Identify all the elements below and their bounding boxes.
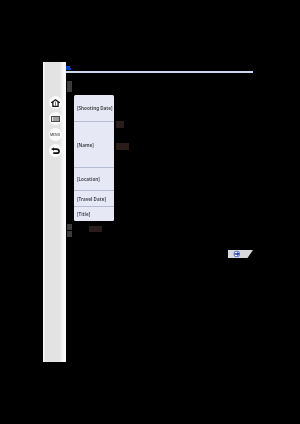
staticText: [Name]: [77, 142, 94, 148]
staticText: [Title]: [77, 211, 91, 217]
staticText: MENU: [50, 132, 61, 136]
button[interactable]: Recent apps: [47, 110, 63, 126]
button[interactable]: [Shooting Date]: [74, 95, 114, 121]
button[interactable]: [Title]: [74, 207, 114, 221]
staticText: [Location]: [77, 176, 100, 182]
button[interactable]: [Travel Date]: [74, 191, 114, 206]
staticText: [Travel Date]: [77, 196, 106, 202]
button[interactable]: Menu: [47, 126, 63, 142]
button[interactable]: Home: [47, 94, 63, 110]
staticText: [Shooting Date]: [77, 105, 113, 111]
button[interactable]: [Name]: [74, 122, 114, 167]
button[interactable]: Next: [228, 250, 253, 258]
button[interactable]: Back: [47, 142, 63, 158]
button[interactable]: [Location]: [74, 168, 114, 190]
